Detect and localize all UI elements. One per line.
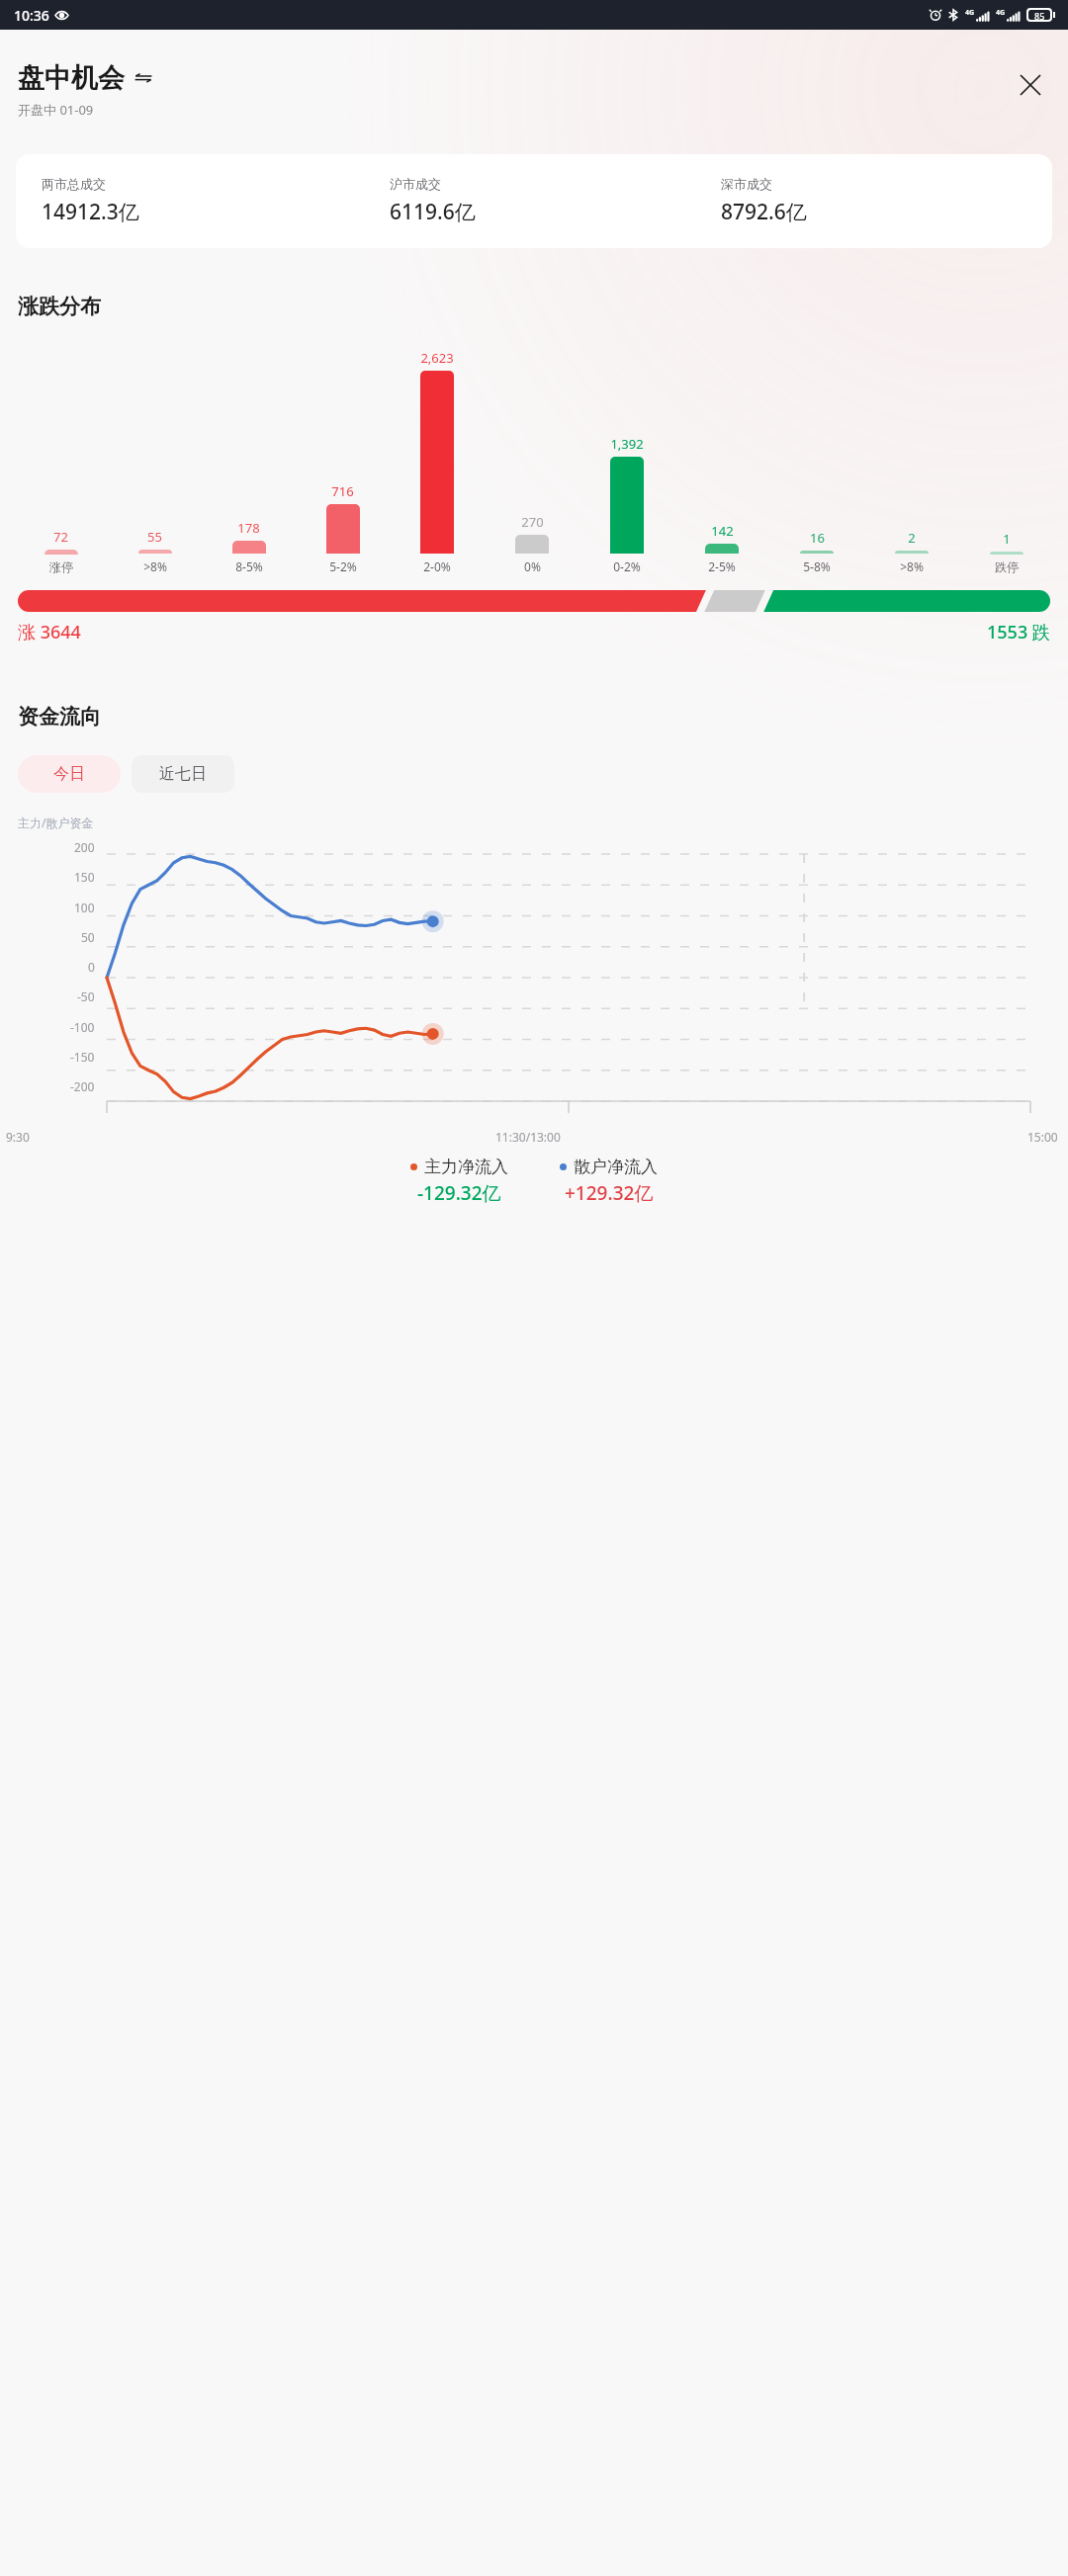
staticText: -150 xyxy=(70,1049,95,1065)
staticText: 55 xyxy=(147,528,162,546)
staticText: 9:30 xyxy=(6,1129,30,1145)
staticText: 15:00 xyxy=(1027,1129,1058,1145)
staticText: 4G xyxy=(965,8,975,18)
staticText: 2 xyxy=(908,529,916,547)
button[interactable]: 1 xyxy=(959,530,1054,574)
staticText: 50 xyxy=(81,929,95,945)
staticText: 0 xyxy=(88,959,95,975)
button[interactable]: 142 xyxy=(674,522,769,574)
button[interactable]: 178 xyxy=(202,519,296,574)
staticText: 主力/散户资金 xyxy=(18,815,94,830)
staticText: 85 xyxy=(1034,10,1045,20)
staticText: 主力净流入 xyxy=(424,1157,508,1177)
button[interactable]: 两市总成交 xyxy=(16,154,1052,248)
staticText: 10:36 xyxy=(14,6,49,25)
button[interactable]: 近七日 xyxy=(132,755,234,793)
staticText: 14912.3亿 xyxy=(42,198,139,226)
staticText: 0-2% xyxy=(613,558,641,574)
staticText: 开盘中 01-09 xyxy=(18,101,94,119)
button[interactable]: 16 xyxy=(769,529,864,574)
staticText: 142 xyxy=(711,522,734,540)
staticText: 11:30/13:00 xyxy=(495,1129,561,1145)
staticText: 5-2% xyxy=(329,558,357,574)
staticText: 0% xyxy=(524,558,541,574)
staticText: 1 xyxy=(1003,530,1011,548)
button[interactable]: 今日 xyxy=(18,755,121,793)
staticText: 涨停 xyxy=(49,559,73,574)
staticText: 72 xyxy=(53,528,68,546)
button[interactable]: 716 xyxy=(296,482,390,574)
staticText: 4G xyxy=(996,8,1006,18)
staticText: 涨 3644 xyxy=(18,620,81,644)
staticText: 5-8% xyxy=(803,558,831,574)
staticText: 盘中机会 xyxy=(18,61,125,95)
staticText: 178 xyxy=(237,519,260,537)
staticText: 沪市成交 xyxy=(390,176,441,192)
button[interactable]: 270 xyxy=(485,513,579,574)
staticText: 1553 跌 xyxy=(987,620,1050,644)
staticText: 150 xyxy=(74,869,95,885)
staticText: -129.32亿 xyxy=(417,1180,501,1206)
staticText: 近七日 xyxy=(159,764,207,784)
button[interactable]: 55 xyxy=(108,528,202,574)
staticText: 今日 xyxy=(53,764,85,784)
staticText: 8-5% xyxy=(235,558,263,574)
staticText: 深市成交 xyxy=(721,176,772,192)
staticText: 2-5% xyxy=(708,558,736,574)
staticText: >8% xyxy=(900,558,924,574)
staticText: 2-0% xyxy=(423,558,451,574)
staticText: 资金流向 xyxy=(18,704,101,730)
staticText: 两市总成交 xyxy=(42,176,106,192)
staticText: -50 xyxy=(77,988,95,1004)
staticText: 跌停 xyxy=(995,559,1019,574)
staticText: -100 xyxy=(70,1019,95,1035)
staticText: 1,392 xyxy=(610,435,644,453)
staticText: 16 xyxy=(810,529,825,547)
staticText: >8% xyxy=(143,558,167,574)
button[interactable]: 切换 xyxy=(133,67,154,89)
staticText: 100 xyxy=(74,900,95,915)
button[interactable]: 2,623 xyxy=(390,349,485,574)
button[interactable]: 关闭 xyxy=(1011,65,1050,105)
staticText: +129.32亿 xyxy=(565,1180,654,1206)
button[interactable]: 72 xyxy=(14,528,108,574)
staticText: 716 xyxy=(331,482,354,500)
staticText: 涨跌分布 xyxy=(18,294,101,319)
staticText: 270 xyxy=(521,513,544,531)
staticText: -200 xyxy=(70,1078,95,1094)
staticText: 散户净流入 xyxy=(574,1157,658,1177)
button[interactable]: 2 xyxy=(864,529,959,574)
staticText: 6119.6亿 xyxy=(390,198,476,226)
button[interactable]: 1,392 xyxy=(579,435,674,574)
staticText: 200 xyxy=(74,839,95,855)
staticText: 8792.6亿 xyxy=(721,198,807,226)
staticText: 2,623 xyxy=(420,349,454,367)
